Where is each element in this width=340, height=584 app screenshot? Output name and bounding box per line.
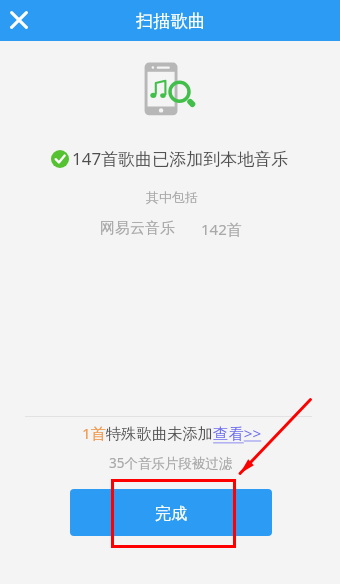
staticText: 147首歌曲已添加到本地音乐: [72, 147, 289, 170]
staticText: 142首: [201, 219, 242, 239]
button[interactable]: Close: [5, 6, 32, 33]
staticText: 网易云音乐: [100, 219, 175, 238]
staticText: 完成: [155, 504, 187, 524]
staticText: 35个音乐片段被过滤: [109, 454, 233, 472]
staticText: 其中包括: [146, 189, 198, 205]
staticText: 扫描歌曲: [136, 10, 206, 32]
button[interactable]: 1首特殊歌曲未添加查看>>: [82, 423, 262, 444]
button[interactable]: 完成: [70, 489, 272, 536]
